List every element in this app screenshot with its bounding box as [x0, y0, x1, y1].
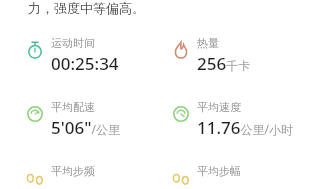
staticText: 00:25:34: [51, 52, 119, 75]
button[interactable]: Exercise time: [0, 36, 119, 75]
button[interactable]: Average cadence: [0, 164, 95, 182]
staticText: 11.76公里/小时: [197, 116, 293, 139]
button[interactable]: Average pace: [0, 100, 120, 139]
button[interactable]: Average speed: [146, 100, 293, 139]
button[interactable]: Calories: [146, 36, 251, 75]
staticText: 运动时间: [51, 36, 95, 50]
staticText: 力，强度中等偏高。: [28, 0, 145, 16]
staticText: 平均速度: [197, 100, 241, 114]
staticText: 平均配速: [51, 100, 95, 114]
button[interactable]: Average stride: [146, 164, 241, 182]
staticText: 256千卡: [197, 52, 251, 75]
staticText: 5'06"/公里: [51, 116, 120, 139]
staticText: 平均步幅: [197, 164, 241, 178]
staticText: 热量: [197, 36, 219, 50]
staticText: 平均步频: [51, 164, 95, 178]
